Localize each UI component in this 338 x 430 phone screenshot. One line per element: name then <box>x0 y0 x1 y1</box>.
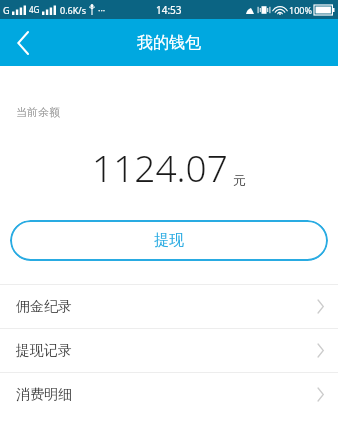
staticText: G <box>3 4 10 16</box>
staticText: 1124.07 <box>92 142 228 192</box>
button[interactable]: 佣金纪录 <box>0 285 338 328</box>
staticText: 100% <box>289 4 312 16</box>
button[interactable]: Back <box>0 20 46 66</box>
staticText: ··· <box>98 4 106 16</box>
staticText: 元 <box>233 172 246 188</box>
button[interactable]: 消费明细 <box>0 373 338 416</box>
button[interactable]: 提现 <box>10 220 328 261</box>
staticText: 当前余额 <box>16 105 60 119</box>
staticText: 佣金纪录 <box>16 298 72 316</box>
button[interactable]: 提现记录 <box>0 329 338 372</box>
staticText: 消费明细 <box>16 386 72 404</box>
staticText: 0.6K/s <box>60 4 86 16</box>
staticText: 4G <box>29 4 40 15</box>
staticText: 提现记录 <box>16 342 72 360</box>
staticText: 提现 <box>154 231 184 250</box>
staticText: 我的钱包 <box>137 33 201 53</box>
staticText: 14:53 <box>156 3 182 17</box>
